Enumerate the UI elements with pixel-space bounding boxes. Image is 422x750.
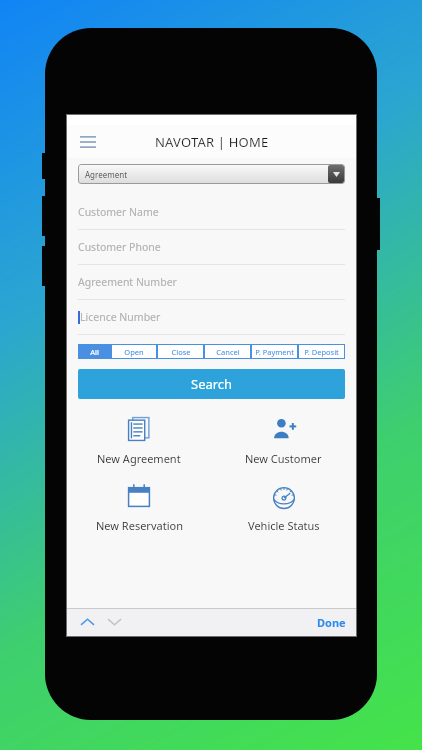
staticText: Customer Phone bbox=[78, 240, 161, 254]
button[interactable]: New Customer bbox=[211, 413, 356, 466]
button[interactable]: New Agreement bbox=[67, 413, 211, 466]
staticText: P. Deposit bbox=[304, 347, 339, 357]
button[interactable]: Customer Phone bbox=[67, 230, 356, 264]
staticText: Cancel bbox=[216, 347, 240, 357]
staticText: Done bbox=[317, 615, 346, 630]
button[interactable]: Vehicle Status bbox=[211, 480, 356, 533]
staticText: Search bbox=[191, 375, 233, 393]
button[interactable]: All bbox=[78, 344, 111, 359]
button[interactable]: Close bbox=[157, 344, 204, 359]
staticText: Vehicle Status bbox=[248, 518, 320, 533]
staticText: New Agreement bbox=[97, 451, 181, 466]
button[interactable]: Licence Number bbox=[67, 300, 356, 334]
button[interactable]: Open bbox=[111, 344, 157, 359]
staticText: Open bbox=[124, 347, 144, 357]
staticText: All bbox=[90, 347, 99, 357]
staticText: P. Payment bbox=[255, 347, 294, 357]
staticText: New Reservation bbox=[96, 518, 183, 533]
button[interactable]: Customer Name bbox=[67, 195, 356, 229]
button[interactable]: Done bbox=[311, 612, 352, 633]
button[interactable]: New Reservation bbox=[67, 480, 211, 533]
button[interactable]: Agreement Number bbox=[67, 265, 356, 299]
staticText: Agreement Number bbox=[78, 275, 177, 289]
staticText: Licence Number bbox=[80, 310, 161, 324]
staticText: NAVOTAR | HOME bbox=[155, 133, 269, 151]
staticText: Agreement bbox=[85, 169, 128, 180]
button[interactable]: Previous field bbox=[76, 611, 98, 633]
staticText: Close bbox=[171, 347, 191, 357]
staticText: New Customer bbox=[245, 451, 322, 466]
button[interactable]: Next field bbox=[103, 611, 125, 633]
button[interactable]: P. Deposit bbox=[298, 344, 345, 359]
button[interactable]: Menu bbox=[75, 129, 101, 155]
staticText: Customer Name bbox=[78, 205, 159, 219]
button[interactable]: Cancel bbox=[204, 344, 251, 359]
button[interactable]: P. Payment bbox=[251, 344, 298, 359]
button[interactable]: Agreement bbox=[78, 164, 345, 184]
button[interactable]: Search bbox=[78, 369, 345, 399]
